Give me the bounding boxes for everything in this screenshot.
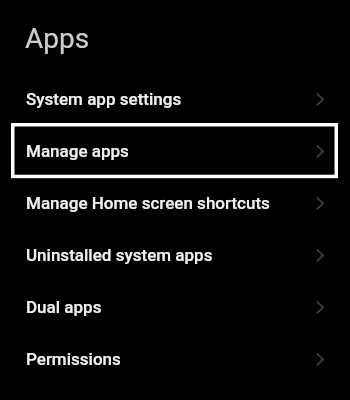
button[interactable]: Manage apps — [0, 125, 350, 177]
button[interactable]: Uninstalled system apps — [0, 229, 350, 281]
staticText: Manage apps — [26, 141, 129, 161]
button[interactable]: System app settings — [0, 73, 350, 125]
staticText: Manage Home screen shortcuts — [26, 193, 270, 213]
button[interactable]: Dual apps — [0, 281, 350, 333]
staticText: Permissions — [26, 349, 121, 369]
staticText: Apps — [25, 22, 90, 55]
staticText: System app settings — [26, 89, 182, 109]
button[interactable]: Manage Home screen shortcuts — [0, 177, 350, 229]
button[interactable]: Permissions — [0, 333, 350, 385]
staticText: Uninstalled system apps — [26, 245, 213, 265]
staticText: Dual apps — [26, 297, 102, 317]
